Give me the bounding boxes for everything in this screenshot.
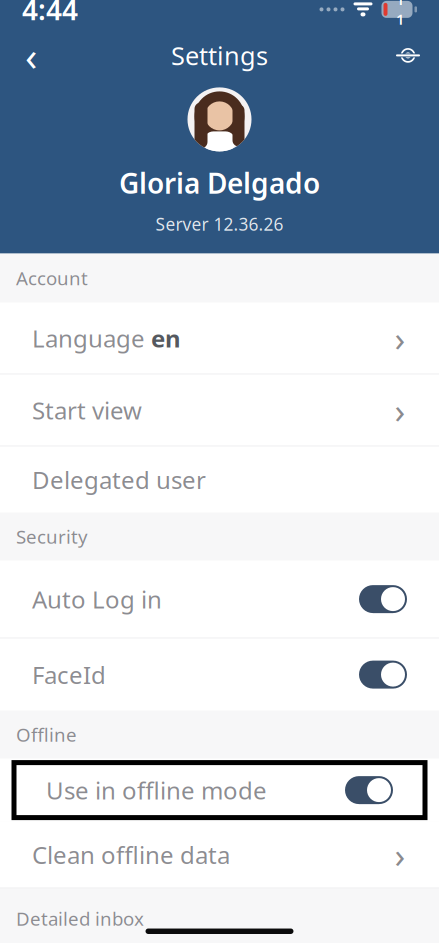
- staticText: Security: [16, 524, 88, 549]
- button[interactable]: FaceId: [0, 639, 439, 711]
- staticText: ›: [394, 315, 405, 361]
- staticText: ›: [394, 387, 405, 433]
- staticText: Server 12.36.26: [155, 213, 283, 236]
- button[interactable]: Use in offline mode: [14, 763, 425, 818]
- staticText: Detailed inbox: [16, 906, 144, 931]
- staticText: 4:44: [22, 0, 78, 28]
- staticText: Gloria Delgado: [119, 164, 320, 202]
- staticText: Auto Log in: [32, 583, 162, 615]
- staticText: Offline: [16, 722, 77, 747]
- button[interactable]: Delegated user: [0, 447, 439, 513]
- button[interactable]: Auto Log in: [0, 561, 439, 638]
- button[interactable]: Back: [8, 32, 54, 78]
- staticText: en: [151, 322, 181, 354]
- staticText: Delegated user: [32, 464, 206, 496]
- staticText: Start view: [32, 394, 142, 426]
- staticText: Settings: [171, 39, 268, 72]
- button[interactable]: Hide password: [385, 32, 431, 78]
- staticText: Account: [16, 266, 88, 290]
- button[interactable]: Clean offline data: [0, 822, 439, 888]
- button[interactable]: Start view: [0, 375, 439, 446]
- staticText: ›: [394, 832, 405, 878]
- staticText: ‹: [25, 29, 37, 82]
- staticText: FaceId: [32, 659, 106, 691]
- staticText: Clean offline data: [32, 839, 230, 871]
- button[interactable]: Language: [0, 303, 439, 374]
- staticText: Use in offline mode: [46, 774, 267, 806]
- staticText: 11: [396, 0, 404, 29]
- staticText: Language: [32, 322, 145, 354]
